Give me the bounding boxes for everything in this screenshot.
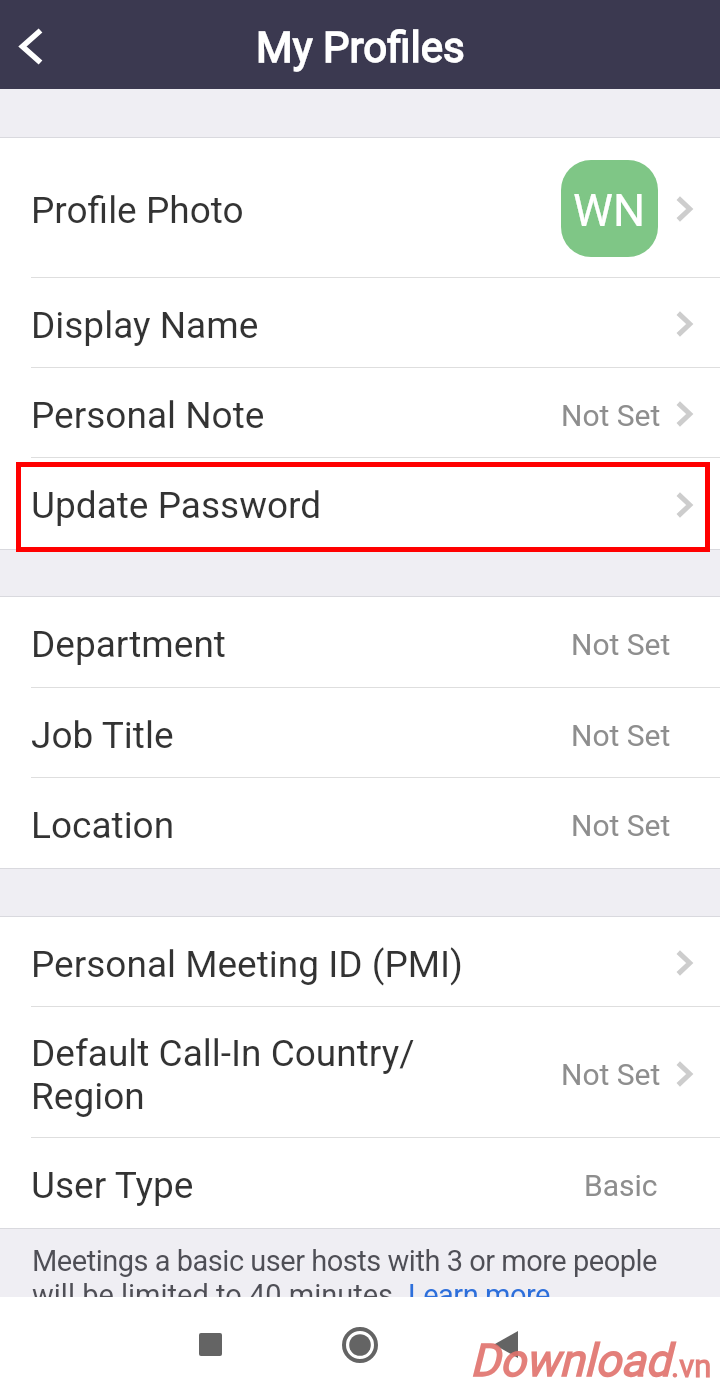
staticText: Basic — [584, 1168, 658, 1203]
button[interactable]: Back — [0, 0, 62, 89]
staticText: Meetings a basic user hosts with 3 or mo… — [32, 1244, 658, 1278]
staticText: Job Title — [31, 714, 571, 757]
button[interactable]: Learn more — [408, 1278, 550, 1297]
staticText: Location — [31, 804, 571, 847]
button[interactable]: Recent apps — [199, 1333, 222, 1356]
button[interactable]: Profile Photo — [0, 138, 720, 278]
staticText: My Profiles — [256, 23, 465, 72]
button[interactable]: Back — [494, 1331, 518, 1358]
staticText: Default Call-In Country/ Region — [31, 1032, 561, 1118]
button[interactable]: User Type — [0, 1138, 720, 1228]
staticText: Personal Meeting ID (PMI) — [31, 943, 661, 986]
button[interactable]: Default Call-In Country/ Region — [0, 1007, 720, 1138]
staticText: Update Password — [31, 484, 661, 527]
button[interactable]: Personal Note — [0, 368, 720, 458]
staticText: Not Set — [561, 398, 661, 433]
staticText: will be limited to 40 minutes. — [32, 1278, 408, 1297]
staticText: Profile Photo — [31, 189, 564, 232]
staticText: Display Name — [31, 304, 661, 347]
button[interactable]: Home — [342, 1327, 378, 1363]
button[interactable]: Job Title — [0, 688, 720, 778]
staticText: Not Set — [571, 808, 671, 843]
button[interactable]: Department — [0, 597, 720, 688]
staticText: Download — [470, 1334, 671, 1387]
button[interactable]: Location — [0, 778, 720, 868]
button[interactable]: Display Name — [0, 278, 720, 368]
button[interactable]: Personal Meeting ID (PMI) — [0, 917, 720, 1007]
staticText: WN — [573, 184, 646, 237]
staticText: Not Set — [571, 627, 671, 662]
staticText: Personal Note — [31, 394, 561, 437]
staticText: Not Set — [561, 1057, 661, 1092]
button[interactable]: Update Password — [0, 458, 720, 549]
staticText: Not Set — [571, 718, 671, 753]
staticText: Department — [31, 623, 571, 666]
staticText: User Type — [31, 1164, 584, 1207]
staticText: .vn — [671, 1348, 712, 1384]
